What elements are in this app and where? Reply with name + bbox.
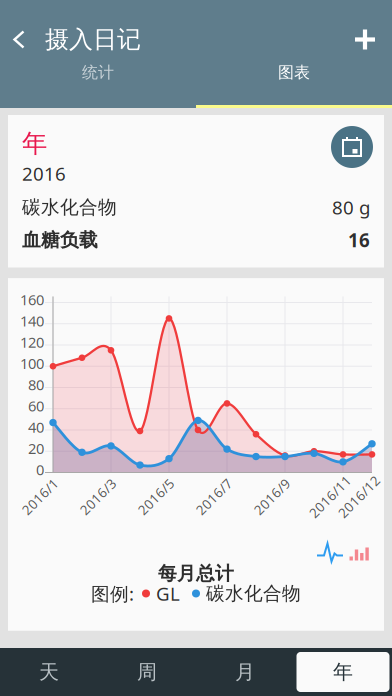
button[interactable]: 天 [0, 648, 98, 696]
staticText: 60 [28, 396, 44, 415]
button[interactable]: 统计 [0, 60, 196, 108]
staticText: 碳水化合物 [22, 196, 117, 219]
staticText: 80 g [332, 195, 370, 220]
staticText: 年 [333, 660, 353, 684]
staticText: 20 [28, 438, 44, 458]
staticText: 2016/9 [249, 488, 294, 505]
staticText: 160 [20, 290, 44, 309]
staticText: 16 [348, 228, 370, 252]
button[interactable]: Choose date [320, 115, 384, 179]
staticText: 周 [137, 660, 157, 684]
staticText: 天 [39, 660, 59, 684]
staticText: 图表 [278, 63, 310, 82]
button[interactable]: 周 [98, 648, 196, 696]
staticText: 2016/1 [17, 488, 62, 505]
button[interactable]: 图表 [196, 60, 392, 108]
staticText: GL [156, 581, 180, 606]
button[interactable]: Add entry [338, 19, 392, 60]
staticText: 统计 [82, 63, 114, 82]
staticText: 100 [20, 353, 44, 373]
staticText: 2016/5 [133, 488, 178, 505]
button[interactable]: Bar chart [342, 539, 376, 569]
staticText: 140 [20, 311, 44, 330]
button[interactable]: Line chart [313, 537, 347, 567]
staticText: 120 [20, 332, 44, 352]
staticText: 2016/3 [75, 488, 120, 505]
staticText: 血糖负载 [22, 229, 98, 251]
staticText: 图例: [91, 581, 134, 606]
button[interactable]: 月 [196, 648, 294, 696]
staticText: 80 [28, 375, 44, 394]
staticText: 年 [22, 128, 47, 159]
staticText: 月 [235, 660, 255, 684]
staticText: 摄入日记 [45, 25, 141, 54]
staticText: 2016 [22, 161, 66, 186]
button[interactable]: 年 [294, 648, 392, 696]
button[interactable]: Back [0, 19, 38, 60]
staticText: 碳水化合物 [206, 582, 301, 605]
staticText: 0 [36, 460, 44, 479]
staticText: 每月总计 [158, 562, 234, 585]
staticText: 2016/11 [303, 488, 356, 505]
staticText: 2016/7 [191, 488, 236, 505]
staticText: 2016/12 [332, 488, 385, 505]
staticText: 40 [28, 417, 44, 437]
